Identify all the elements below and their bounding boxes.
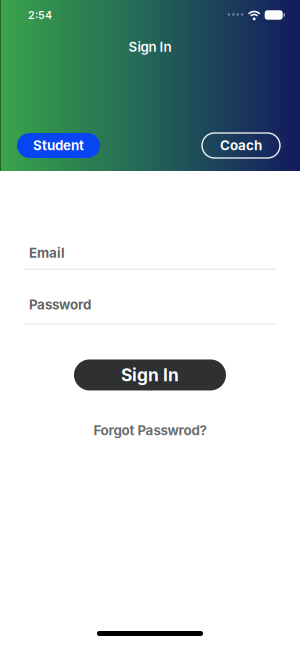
staticText: Student: [33, 138, 84, 153]
staticText: Email: [29, 245, 65, 261]
staticText: Password: [29, 297, 91, 312]
staticText: Coach: [220, 138, 262, 153]
staticText: Sign In: [128, 39, 171, 55]
staticText: Sign In: [121, 365, 179, 385]
staticText: 2:54: [28, 9, 52, 21]
staticText: Forgot Passwrod?: [93, 422, 206, 438]
